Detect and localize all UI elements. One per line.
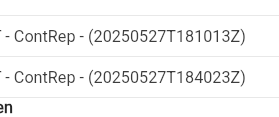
button[interactable]: T - ContRep - (20250527T181013Z) xyxy=(0,16,279,56)
staticText: Anlagen xyxy=(0,98,13,117)
staticText: T - ContRep - (20250527T181013Z) xyxy=(0,27,246,46)
staticText: T - ContRep - (20250527T184023Z) xyxy=(0,68,246,87)
button[interactable]: T - ContRep - (20250527T184023Z) xyxy=(0,57,279,97)
button[interactable]: Anlagen xyxy=(0,98,279,117)
